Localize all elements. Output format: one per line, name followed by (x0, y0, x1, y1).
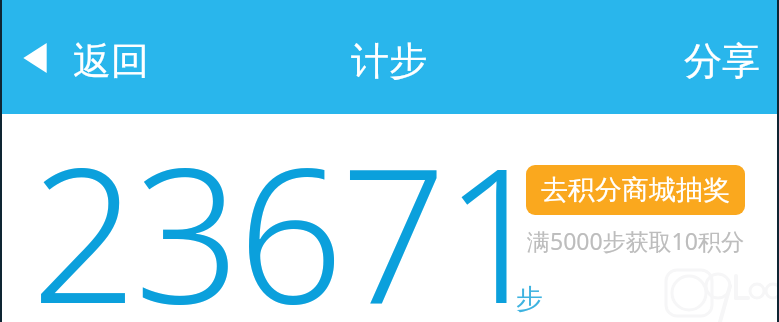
staticText: 返回 (73, 37, 149, 85)
button[interactable]: Back (3, 25, 161, 97)
staticText: 满5000步获取10积分 (527, 225, 744, 256)
staticText: 去积分商城抽奖 (541, 173, 730, 207)
staticText: 计步 (351, 37, 427, 85)
staticText: 23671 (31, 104, 548, 312)
staticText: 步 (516, 282, 543, 316)
button[interactable]: 分享 (662, 23, 779, 99)
button[interactable]: 去积分商城抽奖 (526, 165, 745, 215)
other: Back (22, 42, 48, 74)
